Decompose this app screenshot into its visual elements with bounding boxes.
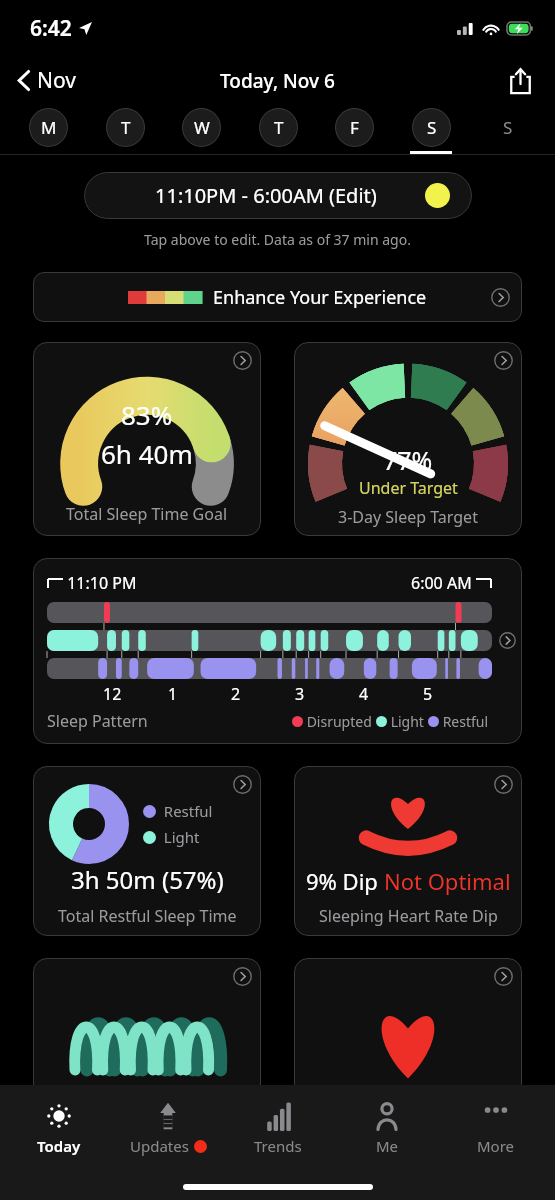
staticText: 11:10PM - 6:00AM (Edit)	[155, 182, 377, 209]
staticText: 4	[359, 683, 369, 703]
staticText: More	[477, 1136, 515, 1156]
staticText: 12	[103, 683, 122, 703]
staticText: 5	[423, 683, 433, 703]
staticText: 6:42	[30, 14, 72, 43]
staticText: Light	[387, 712, 428, 731]
button[interactable]: Restful	[33, 766, 261, 936]
button[interactable]	[33, 958, 261, 1098]
staticText: Today	[37, 1136, 81, 1156]
staticText: Restful	[439, 712, 492, 731]
staticText: Total Sleep Time Goal	[66, 503, 228, 525]
button[interactable]: W	[173, 105, 229, 154]
staticText: S	[503, 116, 513, 139]
staticText: T	[274, 116, 284, 139]
staticText: T	[121, 116, 131, 139]
button[interactable]: Enhance Your Experience	[33, 272, 522, 322]
button[interactable]: 11:10PM - 6:00AM (Edit)	[84, 172, 472, 219]
staticText: 9% Dip	[306, 866, 384, 896]
staticText: F	[350, 116, 359, 139]
staticText: M	[41, 116, 57, 139]
staticText: Light	[156, 827, 200, 847]
staticText: 11:10 PM	[63, 572, 137, 594]
button[interactable]: T	[250, 105, 306, 154]
button[interactable]: 11:10 PM	[33, 558, 522, 744]
staticText: Restful	[156, 801, 213, 821]
staticText: Nov	[37, 66, 76, 95]
button[interactable]	[294, 958, 522, 1098]
staticText: Total Restful Sleep Time	[58, 905, 237, 927]
staticText: 3-Day Sleep Target	[338, 506, 478, 528]
button[interactable]: Nov	[12, 62, 82, 99]
staticText: 83%	[121, 397, 173, 432]
staticText: S	[427, 116, 437, 139]
staticText: 2	[231, 683, 241, 703]
staticText: Me	[376, 1136, 399, 1156]
staticText: Not Optimal	[384, 866, 511, 896]
staticText: Sleeping Heart Rate Dip	[319, 905, 498, 927]
button[interactable]: Updates	[118, 1097, 218, 1160]
staticText: 3h 50m (57%)	[71, 863, 224, 896]
staticText: 3	[295, 683, 305, 703]
staticText: Disrupted	[303, 712, 376, 731]
button[interactable]: S	[403, 105, 459, 154]
staticText: Tap above to edit. Data as of 37 min ago…	[0, 230, 555, 249]
button[interactable]: Today	[9, 1097, 109, 1160]
button[interactable]: 77%	[294, 342, 522, 536]
staticText: 1	[168, 683, 178, 703]
staticText: Enhance Your Experience	[213, 285, 427, 310]
staticText: Trends	[254, 1136, 302, 1156]
staticText: Under Target	[359, 477, 458, 499]
button[interactable]: F	[326, 105, 382, 154]
button[interactable]: 83%	[33, 342, 261, 536]
staticText: W	[194, 116, 210, 139]
button[interactable]: M	[20, 105, 76, 154]
staticText: Today, Nov 6	[220, 68, 335, 94]
staticText: Updates	[130, 1136, 189, 1156]
button[interactable]: T	[97, 105, 153, 154]
button[interactable]: 9% Dip	[294, 766, 522, 936]
button[interactable]: Share	[504, 62, 537, 100]
button[interactable]: Trends	[228, 1097, 328, 1160]
button[interactable]: Me	[337, 1097, 437, 1160]
staticText: 6h 40m	[101, 436, 193, 471]
staticText: 6:00 AM	[411, 572, 476, 594]
staticText: Sleep Pattern	[47, 710, 148, 732]
staticText: 77%	[383, 443, 433, 477]
button[interactable]: More	[446, 1097, 546, 1160]
button[interactable]: S	[479, 105, 535, 154]
